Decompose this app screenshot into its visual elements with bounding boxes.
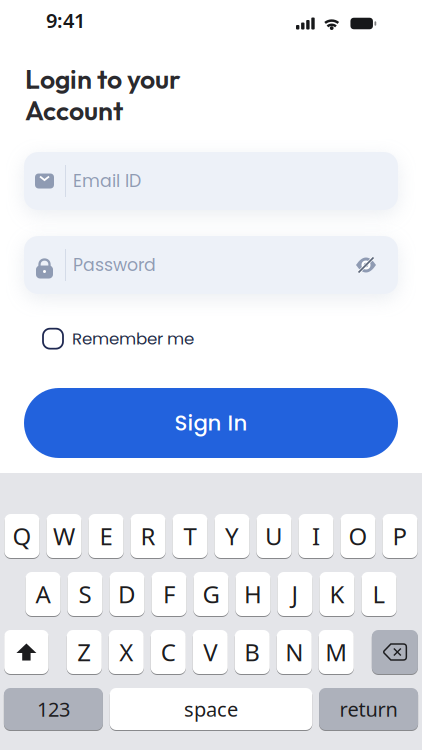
staticText: F [163,578,175,610]
staticText: Remember me [72,327,194,350]
staticText: R [140,520,155,552]
button[interactable]: Password [24,236,398,294]
button[interactable]: V [193,630,228,674]
button[interactable]: Delete [372,630,418,674]
button[interactable]: Q [4,514,40,558]
button[interactable]: O [340,514,376,558]
staticText: Z [77,636,91,668]
button[interactable]: N [277,630,312,674]
button[interactable]: F [151,572,187,616]
staticText: J [291,578,298,610]
button[interactable]: E [88,514,124,558]
button[interactable]: Shift [4,630,49,674]
staticText: L [372,578,385,610]
staticText: Sign In [174,408,247,438]
staticText: Login to your [25,62,181,96]
staticText: Y [225,520,239,552]
staticText: D [118,578,136,610]
staticText: N [285,636,303,668]
staticText: K [329,578,344,610]
staticText: P [392,520,407,552]
button[interactable]: B [235,630,270,674]
staticText: M [325,636,347,668]
staticText: Q [12,520,31,552]
staticText: X [119,636,133,668]
button[interactable]: C [151,630,186,674]
button[interactable]: X [109,630,144,674]
staticText: A [35,578,50,610]
staticText: S [78,578,91,610]
button[interactable]: P [382,514,418,558]
staticText: 9:41 [46,7,85,34]
button[interactable]: I [298,514,334,558]
button[interactable]: K [319,572,355,616]
staticText: E [99,520,112,552]
staticText: T [183,520,196,552]
staticText: space [184,696,238,722]
button[interactable]: Y [214,514,250,558]
staticText: I [312,520,320,552]
staticText: C [161,636,176,668]
button[interactable]: D [109,572,145,616]
button[interactable]: U [256,514,292,558]
staticText: return [340,696,398,722]
button[interactable]: Return [319,688,418,730]
staticText: Email ID [73,169,141,193]
staticText: H [244,578,262,610]
button[interactable]: Show password [356,256,398,274]
staticText: B [244,636,260,668]
button[interactable]: L [361,572,397,616]
staticText: U [265,520,283,552]
button[interactable]: Email ID [24,152,398,210]
button[interactable]: Remember me [43,327,194,350]
button[interactable]: Numbers [4,688,103,730]
staticText: Password [73,253,156,277]
staticText: V [203,636,217,668]
button[interactable]: J [277,572,313,616]
button[interactable]: Sign In [24,388,398,458]
button[interactable]: A [25,572,61,616]
button[interactable]: H [235,572,271,616]
button[interactable]: G [193,572,229,616]
staticText: Account [25,93,123,127]
staticText: 123 [37,696,70,722]
button[interactable]: T [172,514,208,558]
staticText: G [202,578,219,610]
button[interactable]: S [67,572,103,616]
staticText: O [348,520,367,552]
button[interactable]: R [130,514,166,558]
button[interactable]: M [319,630,354,674]
button[interactable]: Space [110,688,312,730]
staticText: W [53,520,75,552]
button[interactable]: Z [67,630,102,674]
button[interactable]: W [46,514,82,558]
